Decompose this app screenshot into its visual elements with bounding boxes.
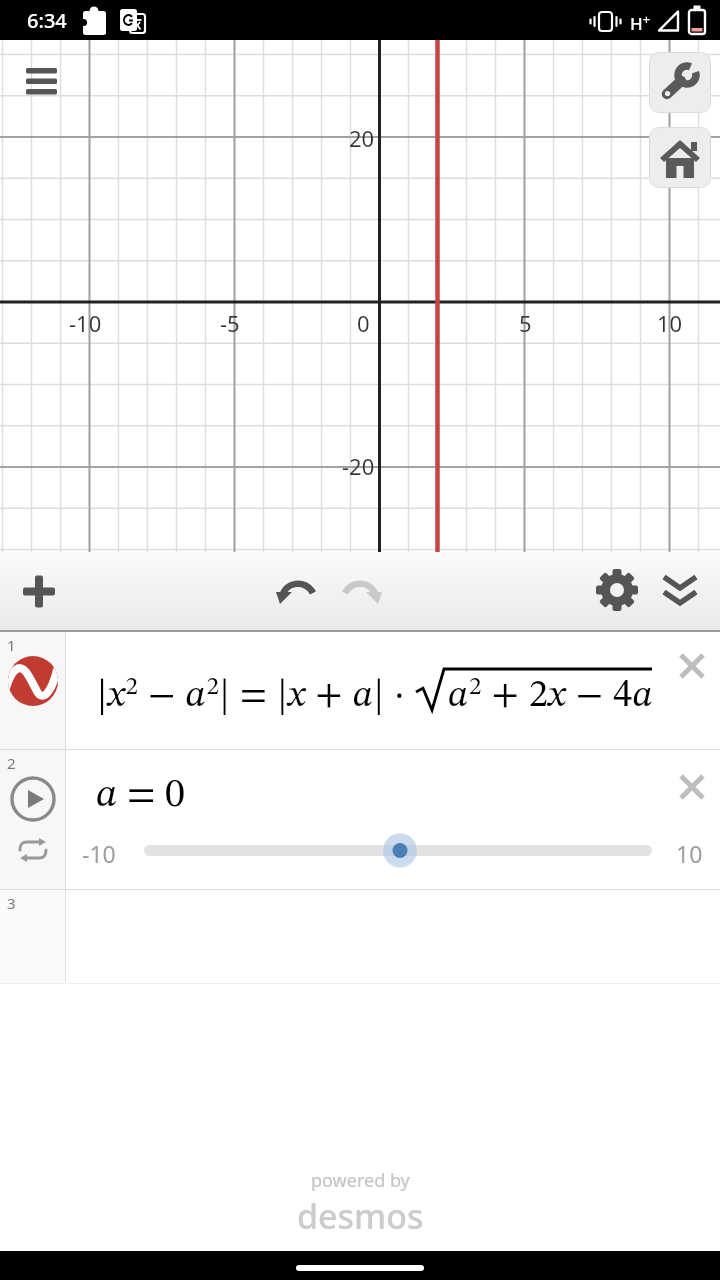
staticText: 20 [349,123,375,153]
staticText: 5 [519,308,532,338]
staticText: 1 [7,635,16,655]
staticText: -10 [69,308,102,338]
staticText: 10 [676,838,703,869]
staticText: -5 [220,308,240,338]
button[interactable] [649,52,711,113]
staticText: 10 [657,308,683,338]
staticText: a = 0 [96,776,185,816]
button[interactable] [593,566,641,614]
button[interactable] [675,649,709,683]
button[interactable] [649,127,711,188]
button[interactable] [9,775,57,823]
staticText: H+ [630,10,651,35]
button[interactable] [13,838,53,864]
staticText: 3 [7,893,16,913]
staticText: -20 [342,451,375,481]
staticText: a2 + 2x − 4a [448,675,654,715]
staticText: 2 [7,753,16,773]
staticText: powered by [311,1168,410,1193]
button[interactable] [272,566,322,616]
button[interactable] [382,833,418,869]
button[interactable] [16,58,66,104]
staticText: 0 [357,308,370,338]
button[interactable] [675,770,709,804]
staticText: desmos [297,1193,424,1239]
button[interactable] [336,566,386,616]
button[interactable] [0,1251,720,1280]
button[interactable]: 2 [0,750,720,889]
button[interactable] [656,566,704,614]
button[interactable]: 1 [0,632,720,749]
button[interactable] [16,568,62,614]
staticText: |x2 − a2| = |x + a| · [97,675,415,715]
staticText: -10 [82,838,116,869]
staticText: 6:34 [27,7,67,34]
